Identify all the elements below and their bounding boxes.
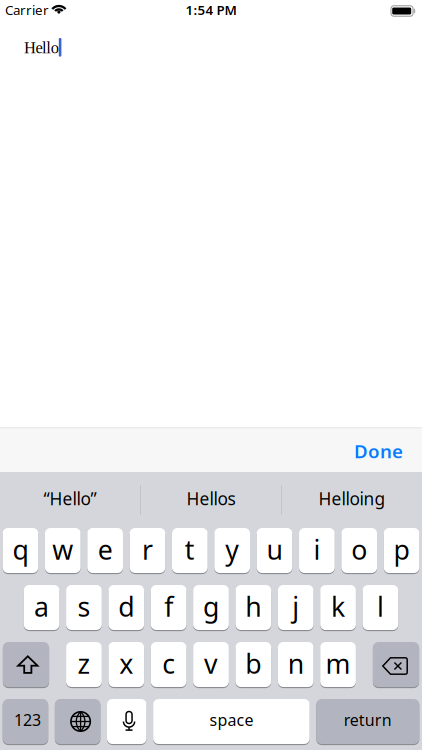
button[interactable]: “Hello” (0, 472, 140, 528)
staticText: y (225, 532, 239, 567)
button[interactable]: a (24, 585, 59, 630)
button[interactable]: n (278, 642, 314, 687)
staticText: q (12, 532, 28, 567)
staticText: z (77, 646, 90, 681)
staticText: f (164, 589, 173, 624)
button[interactable]: s (66, 585, 102, 630)
button[interactable]: b (235, 642, 271, 687)
staticText: l (377, 589, 384, 624)
staticText: c (162, 646, 175, 681)
button[interactable]: o (341, 528, 377, 573)
button[interactable]: Dictation (107, 699, 146, 744)
button[interactable]: g (193, 585, 229, 630)
staticText: k (331, 589, 345, 624)
button[interactable]: t (172, 528, 208, 573)
button[interactable]: m (320, 642, 356, 687)
staticText: x (119, 646, 133, 681)
button[interactable]: v (193, 642, 229, 687)
staticText: Done (354, 439, 403, 463)
staticText: Hello (24, 38, 59, 57)
button[interactable]: r (130, 528, 165, 573)
staticText: d (118, 589, 134, 624)
button[interactable]: j (278, 585, 314, 630)
button[interactable]: c (151, 642, 186, 687)
staticText: p (394, 532, 410, 567)
staticText: o (351, 532, 367, 567)
button[interactable]: Next keyboard (55, 699, 100, 744)
staticText: h (245, 589, 261, 624)
staticText: n (288, 646, 304, 681)
button[interactable]: x (108, 642, 144, 687)
button[interactable]: d (108, 585, 144, 630)
button[interactable]: 123 (3, 699, 48, 744)
staticText: a (34, 589, 49, 624)
staticText: g (203, 589, 219, 624)
button[interactable]: h (235, 585, 271, 630)
button[interactable]: Shift (3, 642, 49, 687)
button[interactable]: Helloing (282, 472, 422, 528)
button[interactable]: space (153, 699, 310, 744)
staticText: i (313, 532, 320, 567)
staticText: m (326, 646, 351, 681)
button[interactable]: w (45, 528, 81, 573)
staticText: w (52, 532, 73, 567)
staticText: t (185, 532, 195, 567)
button[interactable]: return (316, 699, 419, 744)
button[interactable]: y (214, 528, 250, 573)
staticText: 123 (14, 709, 41, 730)
button[interactable]: f (151, 585, 186, 630)
staticText: r (142, 532, 153, 567)
staticText: space (209, 709, 253, 730)
staticText: u (266, 532, 282, 567)
staticText: Helloing (318, 487, 385, 510)
staticText: b (245, 646, 261, 681)
button[interactable]: k (320, 585, 356, 630)
button[interactable]: i (299, 528, 335, 573)
staticText: “Hello” (43, 487, 96, 510)
button[interactable]: u (257, 528, 292, 573)
button[interactable]: Hellos (141, 472, 281, 528)
button[interactable]: p (384, 528, 419, 573)
staticText: Carrier (5, 1, 49, 19)
staticText: 1:54 PM (185, 1, 236, 19)
staticText: v (204, 646, 218, 681)
button[interactable]: Delete (373, 642, 419, 687)
staticText: s (77, 589, 90, 624)
button[interactable]: e (87, 528, 123, 573)
button[interactable]: Done (354, 438, 403, 463)
staticText: e (98, 532, 113, 567)
staticText: return (344, 709, 392, 730)
button[interactable]: q (3, 528, 38, 573)
button[interactable]: z (66, 642, 102, 687)
staticText: j (292, 589, 299, 624)
staticText: Hellos (186, 487, 235, 510)
button[interactable]: l (363, 585, 398, 630)
